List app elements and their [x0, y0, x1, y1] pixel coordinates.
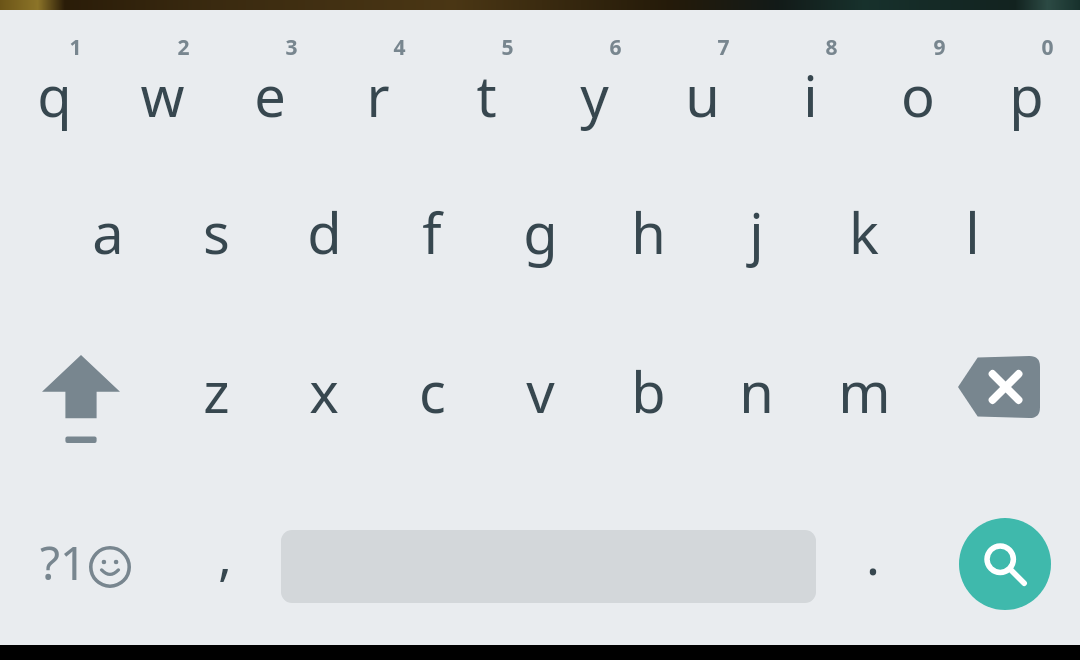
button[interactable]: 7	[648, 10, 756, 155]
button[interactable]: Shift	[0, 315, 162, 475]
button[interactable]: 9	[864, 10, 972, 155]
staticText: i	[803, 57, 818, 133]
button[interactable]: Symbols and emoji	[0, 475, 168, 645]
button[interactable]: 6	[540, 10, 648, 155]
staticText: u	[685, 57, 720, 133]
staticText: .	[866, 519, 880, 590]
staticText: m	[838, 353, 891, 429]
staticText: d	[307, 194, 342, 270]
staticText: o	[901, 57, 935, 133]
staticText: q	[37, 57, 72, 133]
button[interactable]: k	[810, 155, 918, 315]
button[interactable]: x	[270, 315, 378, 475]
button[interactable]: l	[918, 155, 1026, 315]
button[interactable]: Search	[959, 518, 1051, 610]
staticText: r	[366, 57, 390, 133]
staticText: j	[749, 194, 764, 270]
staticText: 7	[717, 33, 730, 62]
staticText: 8	[825, 33, 838, 62]
staticText: y	[580, 57, 609, 133]
staticText: ?1	[40, 531, 87, 594]
button[interactable]: 5	[432, 10, 540, 155]
staticText: l	[965, 194, 980, 270]
button[interactable]: m	[810, 315, 918, 475]
staticText: s	[203, 194, 230, 270]
staticText: 3	[285, 33, 298, 62]
button[interactable]: d	[270, 155, 378, 315]
staticText: 6	[609, 33, 622, 62]
button[interactable]: s	[162, 155, 270, 315]
staticText: h	[631, 194, 666, 270]
staticText: x	[309, 353, 339, 429]
staticText: z	[203, 353, 230, 429]
button[interactable]: ,	[168, 475, 281, 645]
staticText: 4	[393, 33, 406, 62]
button[interactable]: n	[702, 315, 810, 475]
button[interactable]: j	[702, 155, 810, 315]
staticText: t	[476, 57, 497, 133]
button[interactable]: z	[162, 315, 270, 475]
staticText: a	[92, 194, 124, 270]
staticText: ,	[218, 519, 232, 590]
staticText: 0	[1041, 33, 1054, 62]
button[interactable]: 3	[216, 10, 324, 155]
staticText: k	[849, 194, 879, 270]
button[interactable]: 2	[108, 10, 216, 155]
staticText: f	[422, 194, 442, 270]
staticText: b	[631, 353, 666, 429]
staticText: w	[140, 57, 185, 133]
staticText: v	[526, 353, 555, 429]
staticText: c	[419, 353, 446, 429]
button[interactable]: v	[486, 315, 594, 475]
button[interactable]: a	[54, 155, 162, 315]
button[interactable]: c	[378, 315, 486, 475]
button[interactable]: f	[378, 155, 486, 315]
button[interactable]: h	[594, 155, 702, 315]
staticText: p	[1009, 57, 1044, 133]
button[interactable]: .	[816, 475, 929, 645]
staticText: 5	[501, 33, 514, 62]
button[interactable]: g	[486, 155, 594, 315]
staticText: 9	[933, 33, 946, 62]
staticText: 2	[177, 33, 190, 62]
staticText: e	[254, 57, 286, 133]
button[interactable]: 1	[0, 10, 108, 155]
staticText: g	[523, 194, 558, 270]
staticText: n	[739, 353, 774, 429]
button[interactable]: b	[594, 315, 702, 475]
button[interactable]: 8	[756, 10, 864, 155]
staticText: 1	[69, 33, 82, 62]
button[interactable]: 4	[324, 10, 432, 155]
button[interactable]: 0	[972, 10, 1080, 155]
button[interactable]: Backspace	[918, 315, 1080, 475]
